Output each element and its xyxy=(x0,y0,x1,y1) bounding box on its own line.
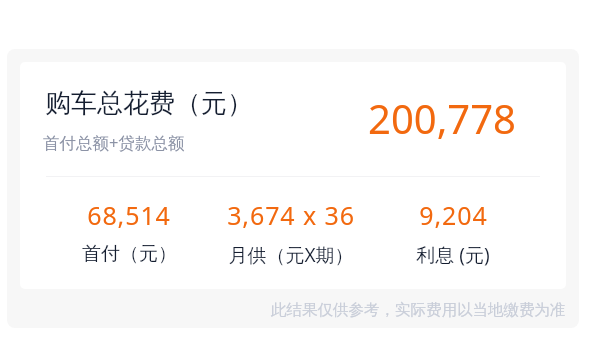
button[interactable]: 购车总花费（元） xyxy=(20,62,566,289)
staticText: 利息 (元) xyxy=(416,242,490,268)
button[interactable]: 3,674 x 36 xyxy=(210,198,372,268)
staticText: 首付（元） xyxy=(82,242,177,266)
button[interactable]: 9,204 xyxy=(372,198,534,268)
staticText: 首付总额+贷款总额 xyxy=(43,131,185,154)
staticText: 3,674 x 36 xyxy=(227,198,355,232)
staticText: 9,204 xyxy=(419,198,488,232)
staticText: 月供（元X期） xyxy=(228,242,354,268)
staticText: 此结果仅供参考，实际费用以当地缴费为准 xyxy=(271,300,566,320)
button[interactable]: 68,514 xyxy=(48,198,210,266)
staticText: 68,514 xyxy=(87,198,171,232)
staticText: 购车总花费（元） xyxy=(45,87,253,120)
staticText: 200,778 xyxy=(368,91,516,145)
